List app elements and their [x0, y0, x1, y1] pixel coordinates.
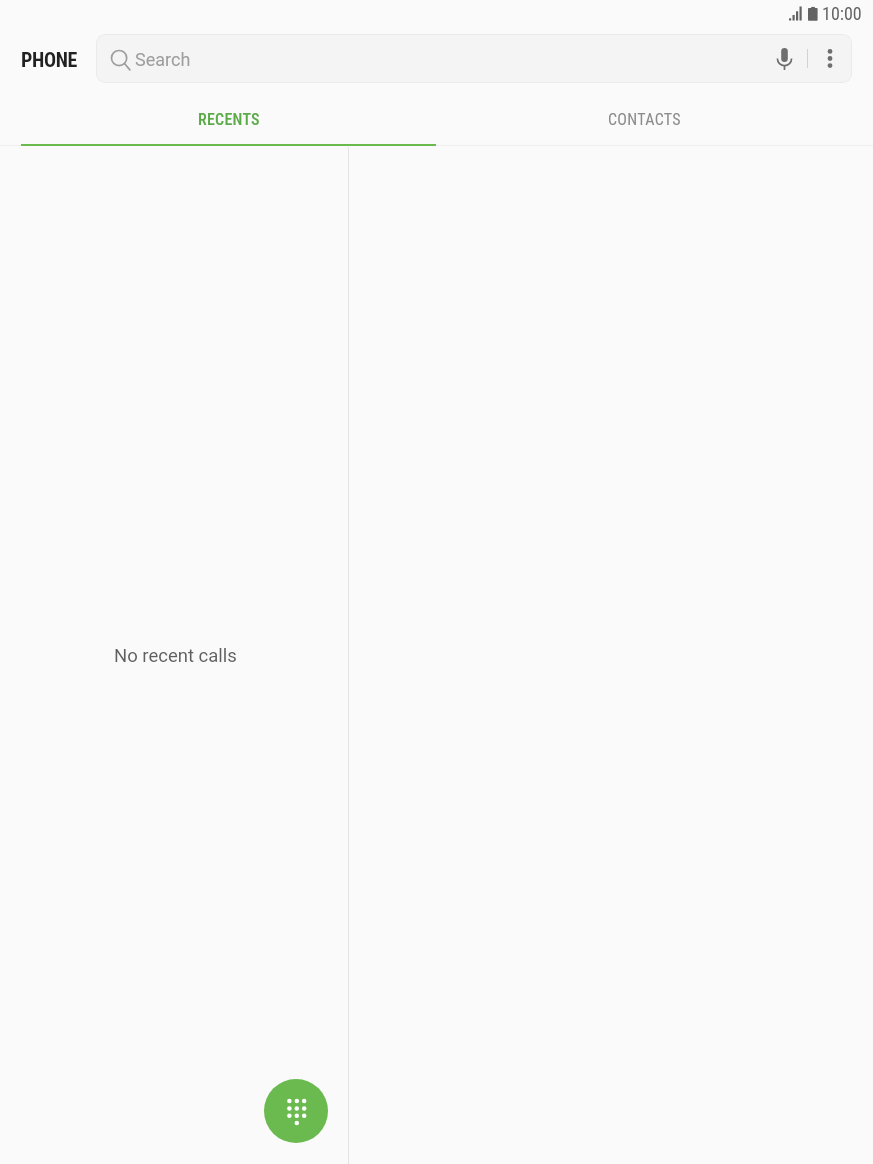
- staticText: Search: [135, 49, 191, 70]
- button[interactable]: Search: [96, 34, 852, 83]
- staticText: RECENTS: [198, 110, 260, 129]
- staticText: CONTACTS: [608, 110, 681, 129]
- button[interactable]: Open dialpad: [264, 1079, 328, 1143]
- staticText: 10:00: [822, 3, 862, 24]
- button[interactable]: More options: [808, 34, 852, 83]
- button[interactable]: CONTACTS: [436, 98, 852, 147]
- button[interactable]: RECENTS: [21, 98, 436, 147]
- staticText: No recent calls: [114, 645, 237, 667]
- staticText: PHONE: [21, 48, 78, 71]
- button[interactable]: Voice search: [760, 34, 808, 83]
